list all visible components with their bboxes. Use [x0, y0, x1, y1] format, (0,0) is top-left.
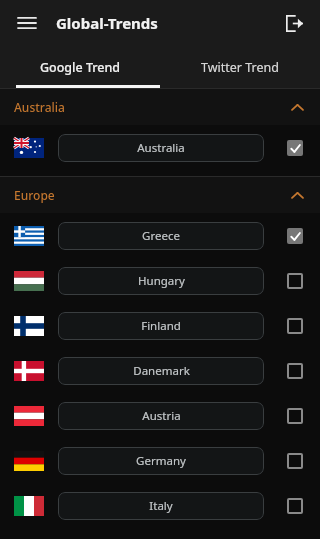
button[interactable]: Europe: [0, 177, 320, 213]
staticText: Hungary: [138, 273, 185, 289]
button[interactable]: Hungary: [0, 258, 320, 303]
staticText: Italy: [149, 498, 173, 514]
button[interactable]: Deselect Australia: [278, 131, 312, 165]
staticText: Danemark: [133, 363, 190, 379]
staticText: Finland: [141, 318, 181, 334]
staticText: Greece: [142, 228, 180, 244]
button[interactable]: Danemark: [0, 348, 320, 393]
button[interactable]: Australia: [0, 89, 320, 125]
button[interactable]: Twitter Trend: [160, 46, 320, 88]
button[interactable]: Greece: [0, 213, 320, 258]
staticText: Global-Trends: [56, 13, 158, 33]
button[interactable]: Select Finland: [278, 309, 312, 343]
button[interactable]: Select Italy: [278, 489, 312, 523]
button[interactable]: Austria: [0, 393, 320, 438]
button[interactable]: Google Trend: [0, 46, 160, 88]
staticText: Austria: [142, 408, 181, 424]
button[interactable]: Open navigation menu: [10, 6, 44, 40]
button[interactable]: Logout: [278, 7, 310, 39]
staticText: Australia: [137, 140, 185, 156]
button[interactable]: Finland: [0, 303, 320, 348]
staticText: Australia: [14, 99, 65, 115]
button[interactable]: Select Germany: [278, 444, 312, 478]
staticText: Google Trend: [40, 59, 121, 76]
button[interactable]: Select Danemark: [278, 354, 312, 388]
button[interactable]: Select Austria: [278, 399, 312, 433]
button[interactable]: Deselect Greece: [278, 219, 312, 253]
staticText: Germany: [136, 453, 186, 469]
button[interactable]: Australia: [0, 125, 320, 170]
button[interactable]: Italy: [0, 483, 320, 528]
button[interactable]: Germany: [0, 438, 320, 483]
staticText: Europe: [14, 187, 55, 203]
button[interactable]: Select Hungary: [278, 264, 312, 298]
staticText: Twitter Trend: [201, 59, 279, 76]
